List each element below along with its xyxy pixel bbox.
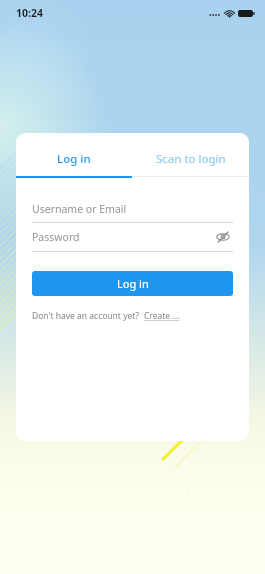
button[interactable]: Show password <box>213 227 233 247</box>
staticText: Log in <box>117 276 149 291</box>
staticText: Don't have an account yet? <box>32 310 140 322</box>
button[interactable]: Scan to login <box>132 151 249 177</box>
button[interactable]: Log in <box>32 271 233 296</box>
staticText: Scan to login <box>156 151 226 167</box>
button[interactable]: Password <box>32 223 233 251</box>
staticText: 10:24 <box>16 6 43 20</box>
staticText: Create ... <box>144 310 180 322</box>
staticText: Log in <box>57 151 91 167</box>
staticText: Username or Email <box>32 202 127 216</box>
staticText: Password <box>32 230 80 244</box>
button[interactable]: Username or Email <box>32 196 233 222</box>
button[interactable]: Create ... <box>144 310 180 322</box>
button[interactable]: Log in <box>16 151 132 178</box>
